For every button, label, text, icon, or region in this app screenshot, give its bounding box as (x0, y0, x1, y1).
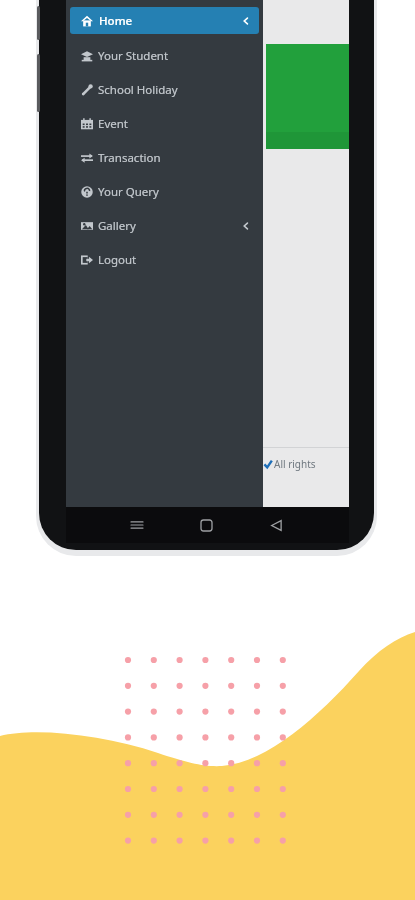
staticText: Event (98, 116, 128, 132)
staticText: Logout (98, 252, 137, 268)
button[interactable]: Transaction (70, 143, 259, 173)
button[interactable]: Your Query (70, 177, 259, 207)
staticText: Transaction (98, 150, 161, 166)
button[interactable]: Logout (70, 245, 259, 275)
button[interactable]: Gallery (70, 211, 259, 241)
button[interactable]: Home (70, 7, 259, 34)
staticText: Your Query (98, 184, 159, 200)
button[interactable]: School Holiday (70, 75, 259, 105)
staticText: Gallery (98, 218, 136, 234)
button[interactable]: Back (265, 514, 287, 536)
button[interactable]: Your Student (70, 41, 259, 71)
staticText: School Holiday (98, 82, 178, 98)
staticText: All rights (274, 457, 316, 471)
staticText: Home (99, 13, 133, 29)
button[interactable]: Event (70, 109, 259, 139)
button[interactable]: Home (195, 514, 217, 536)
staticText: Your Student (98, 48, 169, 64)
button[interactable]: Recent apps (126, 514, 148, 536)
